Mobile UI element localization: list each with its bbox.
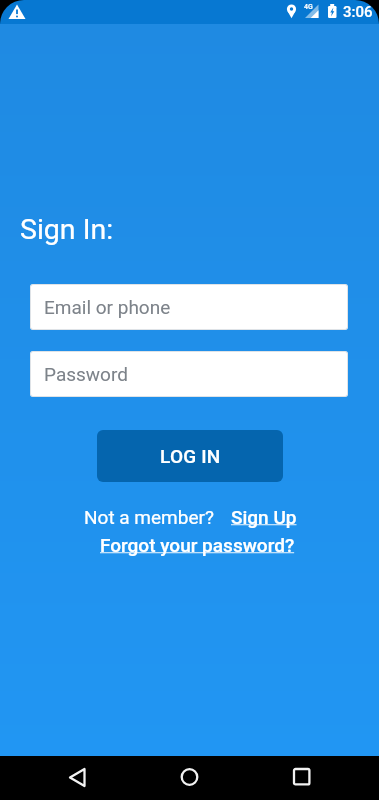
staticText: Not a member?	[84, 506, 214, 528]
staticText: 3:06	[343, 3, 373, 21]
button[interactable]: Sign Up	[231, 506, 297, 528]
button[interactable]: LOG IN	[97, 430, 283, 482]
button[interactable]	[271, 756, 331, 800]
button[interactable]: Email or phone	[30, 284, 348, 330]
staticText: 4G	[304, 3, 313, 11]
button[interactable]: Forgot your password?	[100, 534, 295, 556]
button[interactable]: Password	[30, 351, 348, 397]
button[interactable]	[47, 756, 107, 800]
button[interactable]	[159, 756, 219, 800]
staticText: LOG IN	[160, 445, 221, 467]
staticText: Password	[44, 363, 128, 385]
staticText: Email or phone	[44, 296, 171, 318]
staticText: Sign In:	[20, 213, 114, 246]
